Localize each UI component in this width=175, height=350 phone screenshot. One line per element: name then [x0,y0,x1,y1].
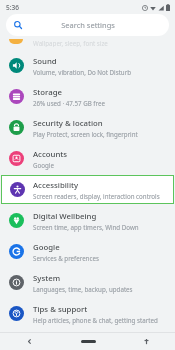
staticText: System [33,273,61,284]
button[interactable]: Accessibility [2,176,173,203]
staticText: Sound [33,56,57,67]
button[interactable]: Google [0,236,175,267]
button[interactable]: Wallpaper, sleep, font size [0,39,175,50]
staticText: Google [33,242,60,253]
button[interactable]: System [0,267,175,298]
button[interactable]: Tips & support [0,298,175,329]
staticText: Wallpaper, sleep, font size [33,39,108,47]
staticText: Screen time, app timers, Wind Down [33,223,139,231]
staticText: Volume, vibration, Do Not Disturb [33,68,132,76]
button[interactable]: Back [0,333,59,350]
button[interactable]: Search [6,14,169,36]
button[interactable]: Digital Wellbeing [0,205,175,236]
staticText: Accounts [33,149,68,160]
staticText: Screen readers, display, interaction con… [33,192,160,200]
button[interactable]: Accounts [0,143,175,174]
staticText: Search settings [61,20,115,30]
staticText: 26% used · 47.57 GB free [33,99,105,107]
other: Search [14,21,22,29]
button[interactable]: Security & location [0,112,175,143]
staticText: Help articles, phone & chat, getting sta… [33,316,158,324]
staticText: Security & location [33,118,103,129]
button[interactable]: Storage [0,81,175,112]
staticText: Accessibility [33,180,79,191]
button[interactable]: Accessibility menu [117,333,175,350]
staticText: Tips & support [33,304,88,315]
staticText: Play Protect, screen lock, fingerprint [33,130,138,138]
staticText: Languages, time, backup, updates [33,285,133,293]
button[interactable]: Sound [0,50,175,81]
staticText: Google [33,161,54,169]
staticText: 5:36 [6,3,19,12]
staticText: Services & preferences [33,254,99,262]
button[interactable]: Home [59,333,117,350]
staticText: Digital Wellbeing [33,211,97,222]
staticText: Storage [33,87,62,98]
